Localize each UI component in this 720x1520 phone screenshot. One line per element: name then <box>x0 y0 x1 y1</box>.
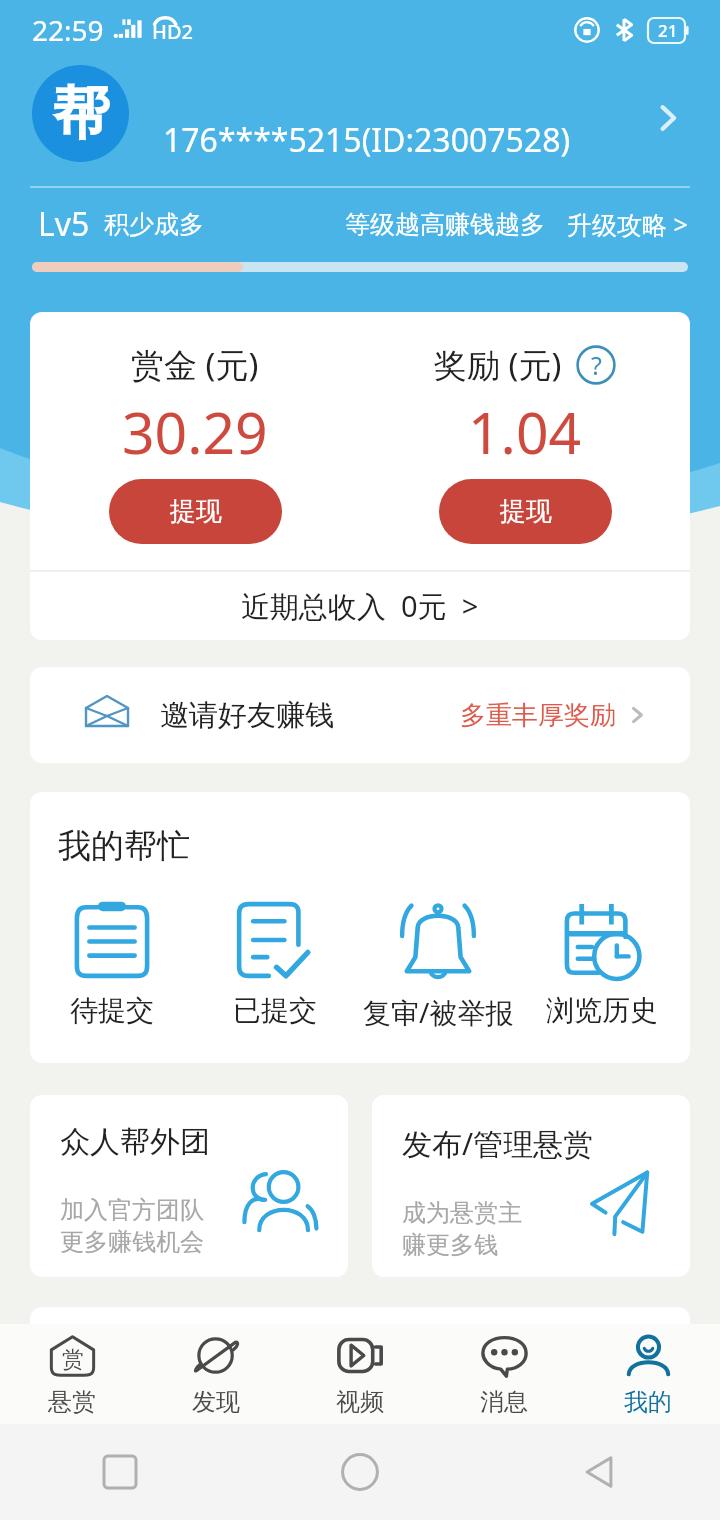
staticText: 21 <box>658 19 678 42</box>
staticText: HD2 <box>152 18 194 45</box>
staticText: 1.04 <box>468 393 582 471</box>
staticText: 赏金 (元) <box>131 342 259 387</box>
staticText: 帮 <box>52 77 110 150</box>
staticText: 已提交 <box>233 993 317 1028</box>
staticText: 积少成多 <box>104 209 204 240</box>
button[interactable]: Home <box>240 1424 480 1520</box>
staticText: 奖励 (元) <box>434 342 562 387</box>
staticText: 浏览历史 <box>546 993 658 1028</box>
staticText: 发现 <box>192 1387 240 1417</box>
button[interactable]: Recents <box>0 1424 240 1520</box>
staticText: 复审/被举报 <box>363 993 514 1031</box>
staticText: 消息 <box>480 1387 528 1417</box>
button[interactable]: 众人帮外团 <box>30 1095 348 1277</box>
button[interactable]: Lv5 <box>0 188 720 260</box>
button[interactable]: Back <box>480 1424 720 1520</box>
staticText: 22:59 <box>32 11 104 49</box>
button[interactable]: 待提交 <box>30 901 193 1028</box>
button[interactable]: 邀请好友赚钱 <box>30 667 690 763</box>
staticText: 我的 <box>624 1387 672 1417</box>
staticText: Lv5 <box>38 202 90 246</box>
staticText: 众人帮外团 <box>60 1123 210 1161</box>
staticText: 等级越高赚钱越多 <box>345 209 545 240</box>
button[interactable]: 提现 <box>109 479 282 544</box>
button[interactable]: 浏览历史 <box>520 901 684 1028</box>
button[interactable]: Reward help <box>576 345 616 385</box>
button[interactable]: 发现 <box>144 1324 288 1424</box>
staticText: 待提交 <box>70 993 154 1028</box>
button[interactable]: 赏 <box>0 1324 144 1424</box>
staticText: 升级攻略 > <box>567 207 688 241</box>
button[interactable]: 我的 <box>576 1324 720 1424</box>
staticText: 提现 <box>500 495 552 528</box>
staticText: 30.29 <box>122 393 268 471</box>
staticText: 176****5215(ID:23007528) <box>163 118 571 162</box>
button[interactable]: 提现 <box>439 479 612 544</box>
button[interactable]: 复审/被举报 <box>356 901 520 1031</box>
staticText: 成为悬赏主 赚更多钱 <box>402 1198 522 1260</box>
staticText: 邀请好友赚钱 <box>160 697 334 734</box>
staticText: 我的帮忙 <box>58 825 190 867</box>
button[interactable]: 近期总收入 0元 > <box>30 572 690 640</box>
staticText: 发布/管理悬赏 <box>402 1123 594 1164</box>
staticText: ? <box>591 348 602 382</box>
staticText: 多重丰厚奖励 <box>460 699 616 732</box>
staticText: 近期总收入 0元 > <box>241 586 479 626</box>
button[interactable]: 已提交 <box>193 901 356 1028</box>
staticText: 提现 <box>170 495 222 528</box>
staticText: 悬赏 <box>48 1387 96 1417</box>
button[interactable]: 视频 <box>288 1324 432 1424</box>
staticText: 赏 <box>62 1346 84 1374</box>
button[interactable]: 消息 <box>432 1324 576 1424</box>
staticText: 视频 <box>336 1387 384 1417</box>
button[interactable]: Account details <box>640 90 696 146</box>
button[interactable]: 发布/管理悬赏 <box>372 1095 690 1277</box>
staticText: 加入官方团队 更多赚钱机会 <box>60 1195 204 1257</box>
